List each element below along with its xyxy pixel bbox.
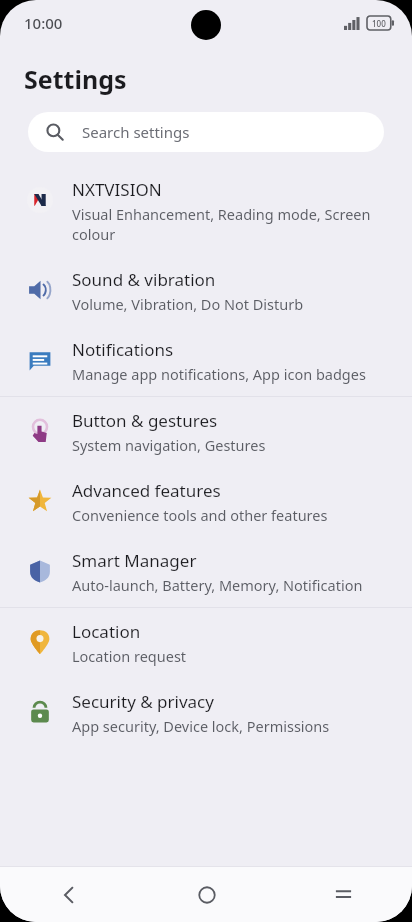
staticText: 10:00	[24, 13, 63, 33]
button[interactable]: Location	[0, 608, 412, 678]
button[interactable]: Notifications	[0, 326, 412, 396]
button[interactable]: Button & gestures	[0, 397, 412, 467]
staticText: Notifications	[72, 338, 174, 361]
staticText: Location	[72, 620, 141, 643]
staticText: Search settings	[82, 122, 190, 142]
staticText: Button & gestures	[72, 409, 218, 432]
button[interactable]: Smart Manager	[0, 537, 412, 607]
staticText: Location request	[72, 646, 187, 666]
staticText: System navigation, Gestures	[72, 435, 266, 455]
staticText: Manage app notifications, App icon badge…	[72, 364, 366, 384]
button[interactable]: NXTVISION	[0, 166, 412, 256]
button[interactable]: Home	[138, 867, 275, 922]
staticText: Auto-launch, Battery, Memory, Notificati…	[72, 575, 363, 595]
staticText: Settings	[24, 62, 127, 96]
button[interactable]: Sound & vibration	[0, 256, 412, 326]
button[interactable]: Recent apps	[275, 867, 412, 922]
staticText: 100	[372, 18, 386, 29]
button[interactable]: Security & privacy	[0, 678, 412, 748]
button[interactable]: Advanced features	[0, 467, 412, 537]
staticText: Advanced features	[72, 479, 221, 502]
staticText: Visual Enhancement, Reading mode, Screen…	[72, 204, 388, 244]
staticText: Security & privacy	[72, 690, 214, 713]
button[interactable]: Search settings	[28, 112, 384, 152]
staticText: Smart Manager	[72, 549, 197, 572]
button[interactable]: Back	[0, 867, 138, 922]
staticText: Convenience tools and other features	[72, 505, 328, 525]
staticText: NXTVISION	[72, 178, 162, 201]
staticText: Volume, Vibration, Do Not Disturb	[72, 294, 304, 314]
staticText: App security, Device lock, Permissions	[72, 716, 330, 736]
staticText: Sound & vibration	[72, 268, 216, 291]
